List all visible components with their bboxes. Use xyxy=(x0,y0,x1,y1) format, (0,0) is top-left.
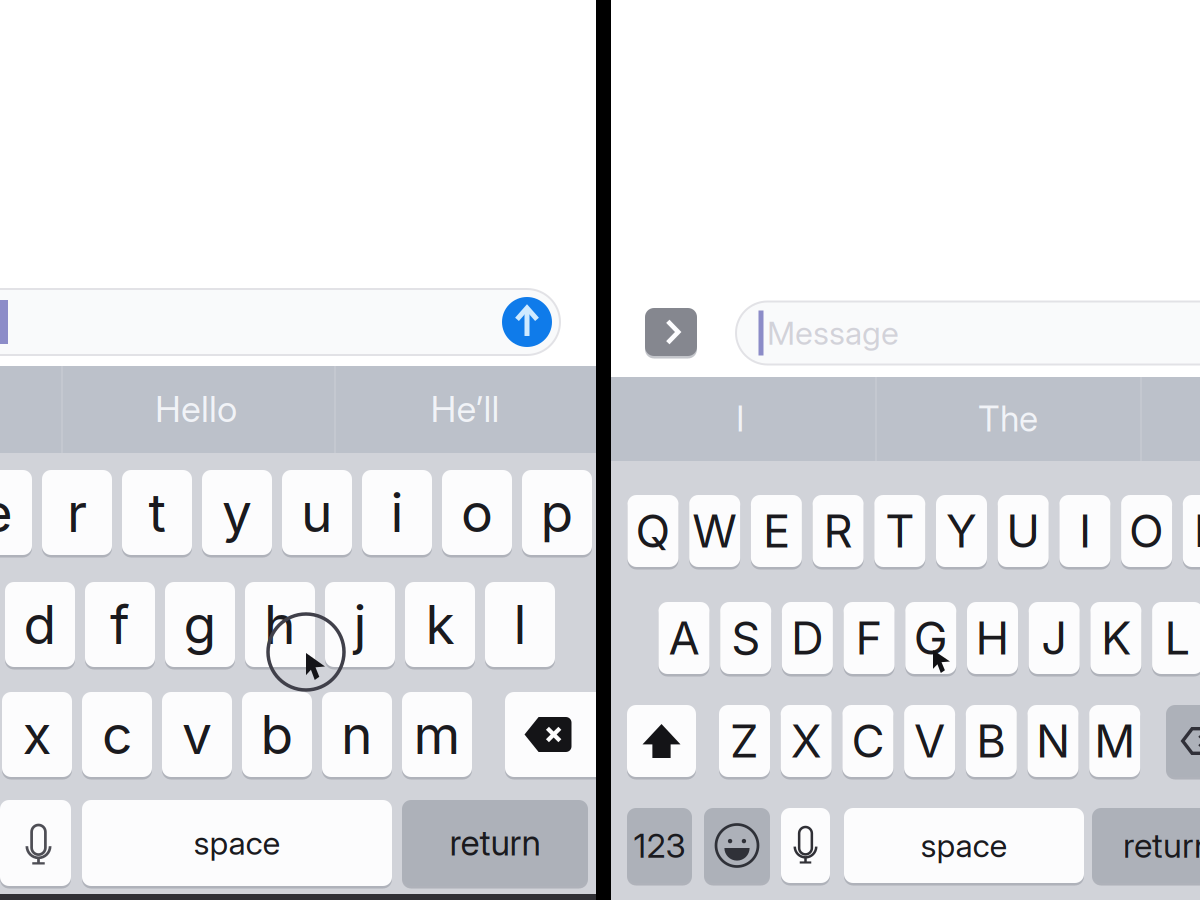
button[interactable]: space xyxy=(844,808,1084,883)
button[interactable]: e xyxy=(0,470,32,555)
button[interactable]: H xyxy=(967,602,1018,674)
button[interactable]: C xyxy=(842,705,893,777)
staticText: B xyxy=(976,714,1006,768)
staticText: x xyxy=(22,702,51,767)
staticText: u xyxy=(301,480,333,545)
button[interactable]: A xyxy=(658,602,709,674)
staticText: S xyxy=(731,611,760,665)
button[interactable]: f xyxy=(85,582,155,667)
button[interactable]: Apps xyxy=(645,308,697,356)
button[interactable]: U xyxy=(998,495,1049,567)
staticText: Message xyxy=(767,314,899,352)
button[interactable]: Dictate xyxy=(781,808,830,883)
button[interactable]: E xyxy=(751,495,802,567)
button[interactable]: S xyxy=(720,602,771,674)
button[interactable]: D xyxy=(782,602,833,674)
button[interactable]: V xyxy=(904,705,955,777)
button[interactable]: X xyxy=(781,705,832,777)
staticText: M xyxy=(1094,714,1135,768)
staticText: m xyxy=(413,702,460,767)
button[interactable]: P xyxy=(1183,495,1200,567)
staticText: g xyxy=(183,592,216,657)
staticText: X xyxy=(791,714,822,768)
button[interactable]: return xyxy=(1092,808,1200,883)
staticText: k xyxy=(425,592,454,657)
button[interactable]: c xyxy=(82,692,152,777)
button[interactable]: He’ll xyxy=(337,365,593,452)
staticText: D xyxy=(791,611,824,665)
button[interactable]: g xyxy=(165,582,235,667)
staticText: space xyxy=(920,826,1007,865)
button[interactable]: n xyxy=(322,692,392,777)
staticText: W xyxy=(692,504,737,558)
button[interactable]: b xyxy=(242,692,312,777)
button[interactable]: M xyxy=(1089,705,1140,777)
button[interactable]: k xyxy=(405,582,475,667)
staticText: return xyxy=(1123,825,1200,866)
button[interactable]: y xyxy=(202,470,272,555)
button[interactable]: o xyxy=(442,470,512,555)
button[interactable]: Hello xyxy=(60,365,331,452)
button[interactable]: W xyxy=(689,495,740,567)
button[interactable]: m xyxy=(402,692,472,777)
button[interactable]: j xyxy=(325,582,395,667)
button[interactable]: t xyxy=(122,470,192,555)
button[interactable]: K xyxy=(1090,602,1141,674)
staticText: C xyxy=(851,714,884,768)
button[interactable]: x xyxy=(2,692,72,777)
button[interactable]: R xyxy=(813,495,864,567)
button[interactable]: F xyxy=(844,602,895,674)
button[interactable]: O xyxy=(1121,495,1172,567)
button[interactable]: return xyxy=(402,800,588,886)
button[interactable]: Delete xyxy=(1166,705,1200,777)
button[interactable]: Z xyxy=(719,705,770,777)
button[interactable]: Dictate xyxy=(0,800,71,886)
staticText: e xyxy=(0,480,12,545)
staticText: l xyxy=(513,592,526,657)
button[interactable]: Y xyxy=(936,495,987,567)
button[interactable]: J xyxy=(1029,602,1080,674)
button[interactable]: l xyxy=(485,582,555,667)
staticText: R xyxy=(824,504,853,558)
button[interactable]: u xyxy=(282,470,352,555)
staticText: I xyxy=(1079,504,1091,558)
button[interactable]: I xyxy=(609,377,871,461)
button[interactable]: G xyxy=(905,602,956,674)
button[interactable]: T xyxy=(874,495,925,567)
button[interactable]: v xyxy=(162,692,232,777)
staticText: f xyxy=(110,592,130,657)
button[interactable]: Emoji xyxy=(704,808,770,883)
button[interactable]: Q xyxy=(627,495,678,567)
button[interactable]: N xyxy=(1027,705,1078,777)
button[interactable]: d xyxy=(5,582,75,667)
button[interactable]: r xyxy=(42,470,112,555)
staticText: The xyxy=(978,398,1038,440)
staticText: V xyxy=(914,714,945,768)
staticText: K xyxy=(1101,611,1131,665)
button[interactable]: h xyxy=(245,582,315,667)
staticText: E xyxy=(763,504,790,558)
button[interactable]: 123 xyxy=(627,808,692,883)
staticText: T xyxy=(885,504,914,558)
button[interactable]: B xyxy=(966,705,1017,777)
staticText: i xyxy=(390,480,403,545)
button[interactable]: Shift xyxy=(627,705,696,777)
staticText: c xyxy=(102,702,132,767)
staticText: j xyxy=(353,592,366,657)
button[interactable]: space xyxy=(82,800,392,886)
staticText: Y xyxy=(946,504,977,558)
staticText: G xyxy=(914,611,948,665)
staticText: h xyxy=(264,592,296,657)
button[interactable]: I xyxy=(1059,495,1110,567)
button[interactable]: p xyxy=(522,470,592,555)
staticText: P xyxy=(1194,504,1200,558)
staticText: A xyxy=(668,611,699,665)
button[interactable]: The xyxy=(877,377,1139,461)
staticText: b xyxy=(260,702,293,767)
button[interactable]: i xyxy=(362,470,432,555)
staticText: I xyxy=(736,398,744,440)
button[interactable]: Send xyxy=(502,297,552,347)
button[interactable]: Delete xyxy=(505,692,605,777)
staticText: J xyxy=(1041,611,1067,665)
button[interactable]: L xyxy=(1152,602,1200,674)
